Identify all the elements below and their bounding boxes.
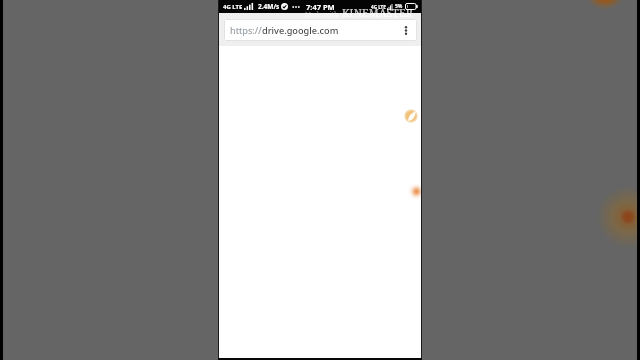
staticText: KINEMASTER bbox=[342, 6, 413, 20]
staticText: https:// bbox=[230, 24, 262, 37]
button[interactable]: More options bbox=[397, 19, 415, 41]
button[interactable]: Compose bbox=[404, 109, 418, 123]
staticText: drive.google.com bbox=[262, 24, 339, 37]
staticText: 4G LTE bbox=[371, 4, 386, 10]
staticText: 2.4M/s bbox=[258, 2, 280, 11]
staticText: Made with bbox=[305, 10, 339, 19]
button[interactable]: Address bar bbox=[224, 19, 417, 41]
staticText: 5% bbox=[395, 3, 403, 10]
staticText: 7:47 PM bbox=[306, 2, 335, 12]
staticText: 4G LTE bbox=[223, 3, 243, 11]
